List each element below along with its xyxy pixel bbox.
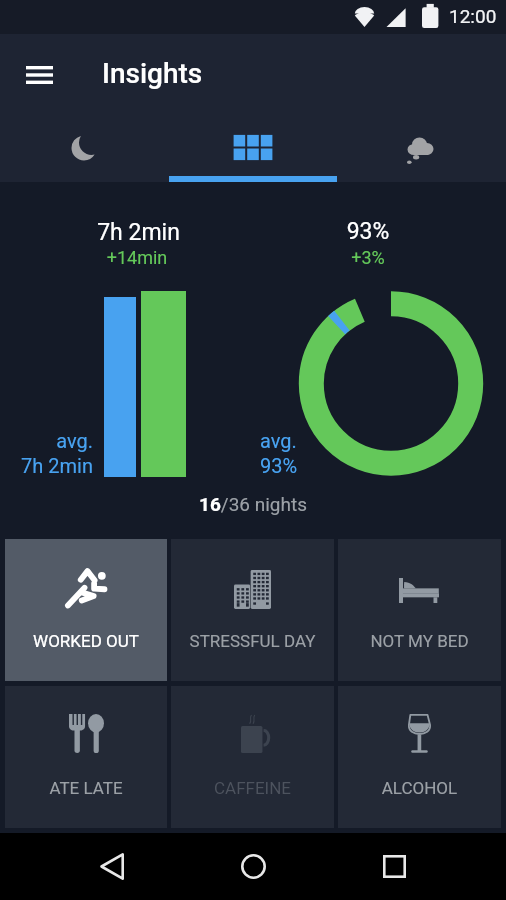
staticText: ALCOHOL <box>338 778 501 798</box>
button[interactable]: Sleep stats tab <box>0 116 168 182</box>
button[interactable]: ALCOHOL <box>338 686 501 828</box>
button[interactable]: CAFFEINE <box>171 686 334 828</box>
staticText: WORKED OUT <box>5 631 167 651</box>
button[interactable]: Recent apps <box>368 840 420 892</box>
button[interactable]: NOT MY BED <box>338 539 501 681</box>
button[interactable]: Open navigation drawer <box>13 54 65 96</box>
staticText: 7h 2min <box>0 219 277 246</box>
button[interactable]: Home <box>227 840 279 892</box>
staticText: ATE LATE <box>5 778 167 798</box>
staticText: +14min <box>0 247 274 268</box>
staticText: STRESSFUL DAY <box>171 631 334 651</box>
staticText: 93% <box>230 218 506 245</box>
button[interactable]: WORKED OUT <box>5 539 167 681</box>
staticText: 12:00 <box>449 5 497 27</box>
staticText: Insights <box>102 57 203 90</box>
staticText: CAFFEINE <box>171 778 334 798</box>
button[interactable]: Noises tab <box>337 116 506 182</box>
staticText: NOT MY BED <box>338 631 501 651</box>
button[interactable]: STRESSFUL DAY <box>171 539 334 681</box>
staticText: 16/36 nights <box>0 493 506 515</box>
button[interactable]: Overview tab <box>168 116 337 182</box>
staticText: avg. 93% <box>260 429 298 478</box>
staticText: +3% <box>230 247 506 268</box>
staticText: avg. 7h 2min <box>0 429 93 478</box>
button[interactable]: Back <box>86 840 138 892</box>
button[interactable]: ATE LATE <box>5 686 167 828</box>
